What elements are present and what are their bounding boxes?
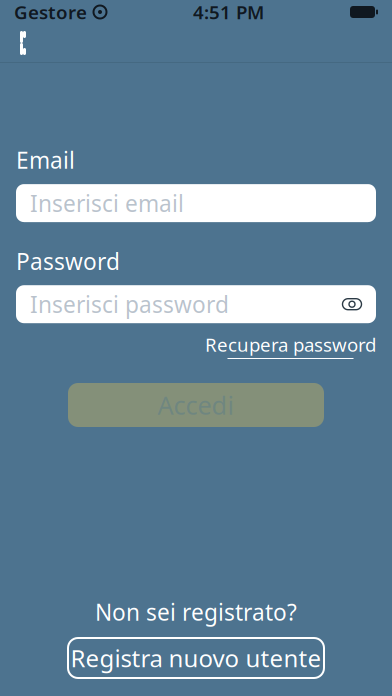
staticText: Recupera password xyxy=(205,332,376,357)
staticText: Accedi xyxy=(157,388,234,422)
button[interactable]: Inserisci password xyxy=(16,285,376,323)
staticText: Email xyxy=(16,145,75,175)
button[interactable]: Accedi xyxy=(68,383,324,427)
button[interactable]: Inserisci email xyxy=(16,184,376,222)
staticText: Registra nuovo utente xyxy=(70,642,321,674)
staticText: Inserisci email xyxy=(30,188,184,218)
staticText: Gestore xyxy=(14,0,87,24)
staticText: Inserisci password xyxy=(30,289,229,319)
button[interactable]: Recupera password xyxy=(205,332,376,359)
staticText: Non sei registrato? xyxy=(95,597,297,627)
staticText: 4:51 PM xyxy=(193,0,264,24)
staticText: Password xyxy=(16,246,120,276)
button[interactable]: Back xyxy=(0,24,46,62)
button[interactable]: Registra nuovo utente xyxy=(68,638,324,678)
